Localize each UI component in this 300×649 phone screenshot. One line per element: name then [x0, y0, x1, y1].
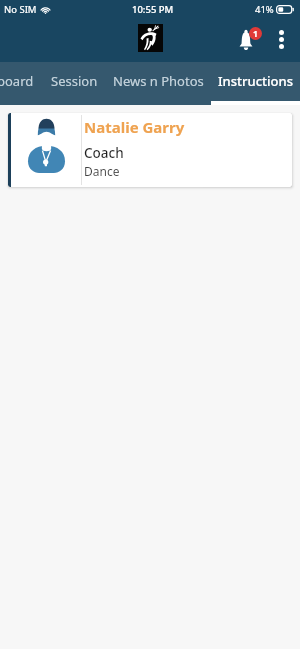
staticText: 1: [253, 28, 258, 40]
button[interactable]: More options: [270, 28, 292, 50]
staticText: Dance: [84, 163, 120, 179]
button[interactable]: Instructions: [210, 62, 300, 105]
staticText: Coach: [84, 144, 124, 162]
staticText: Session: [51, 72, 98, 90]
staticText: 41%: [255, 3, 274, 16]
staticText: Instructions: [218, 72, 293, 90]
staticText: No SIM: [4, 3, 37, 16]
button[interactable]: App logo: [138, 24, 163, 52]
staticText: 10:55 PM: [132, 3, 174, 16]
staticText: board: [0, 72, 34, 90]
button[interactable]: Natalie Garry: [8, 113, 292, 187]
staticText: Natalie Garry: [84, 117, 185, 137]
staticText: News n Photos: [113, 72, 204, 90]
button[interactable]: News n Photos: [105, 62, 212, 105]
button[interactable]: Session: [43, 62, 106, 105]
button[interactable]: board: [0, 62, 42, 105]
button[interactable]: Notifications: [233, 23, 265, 55]
